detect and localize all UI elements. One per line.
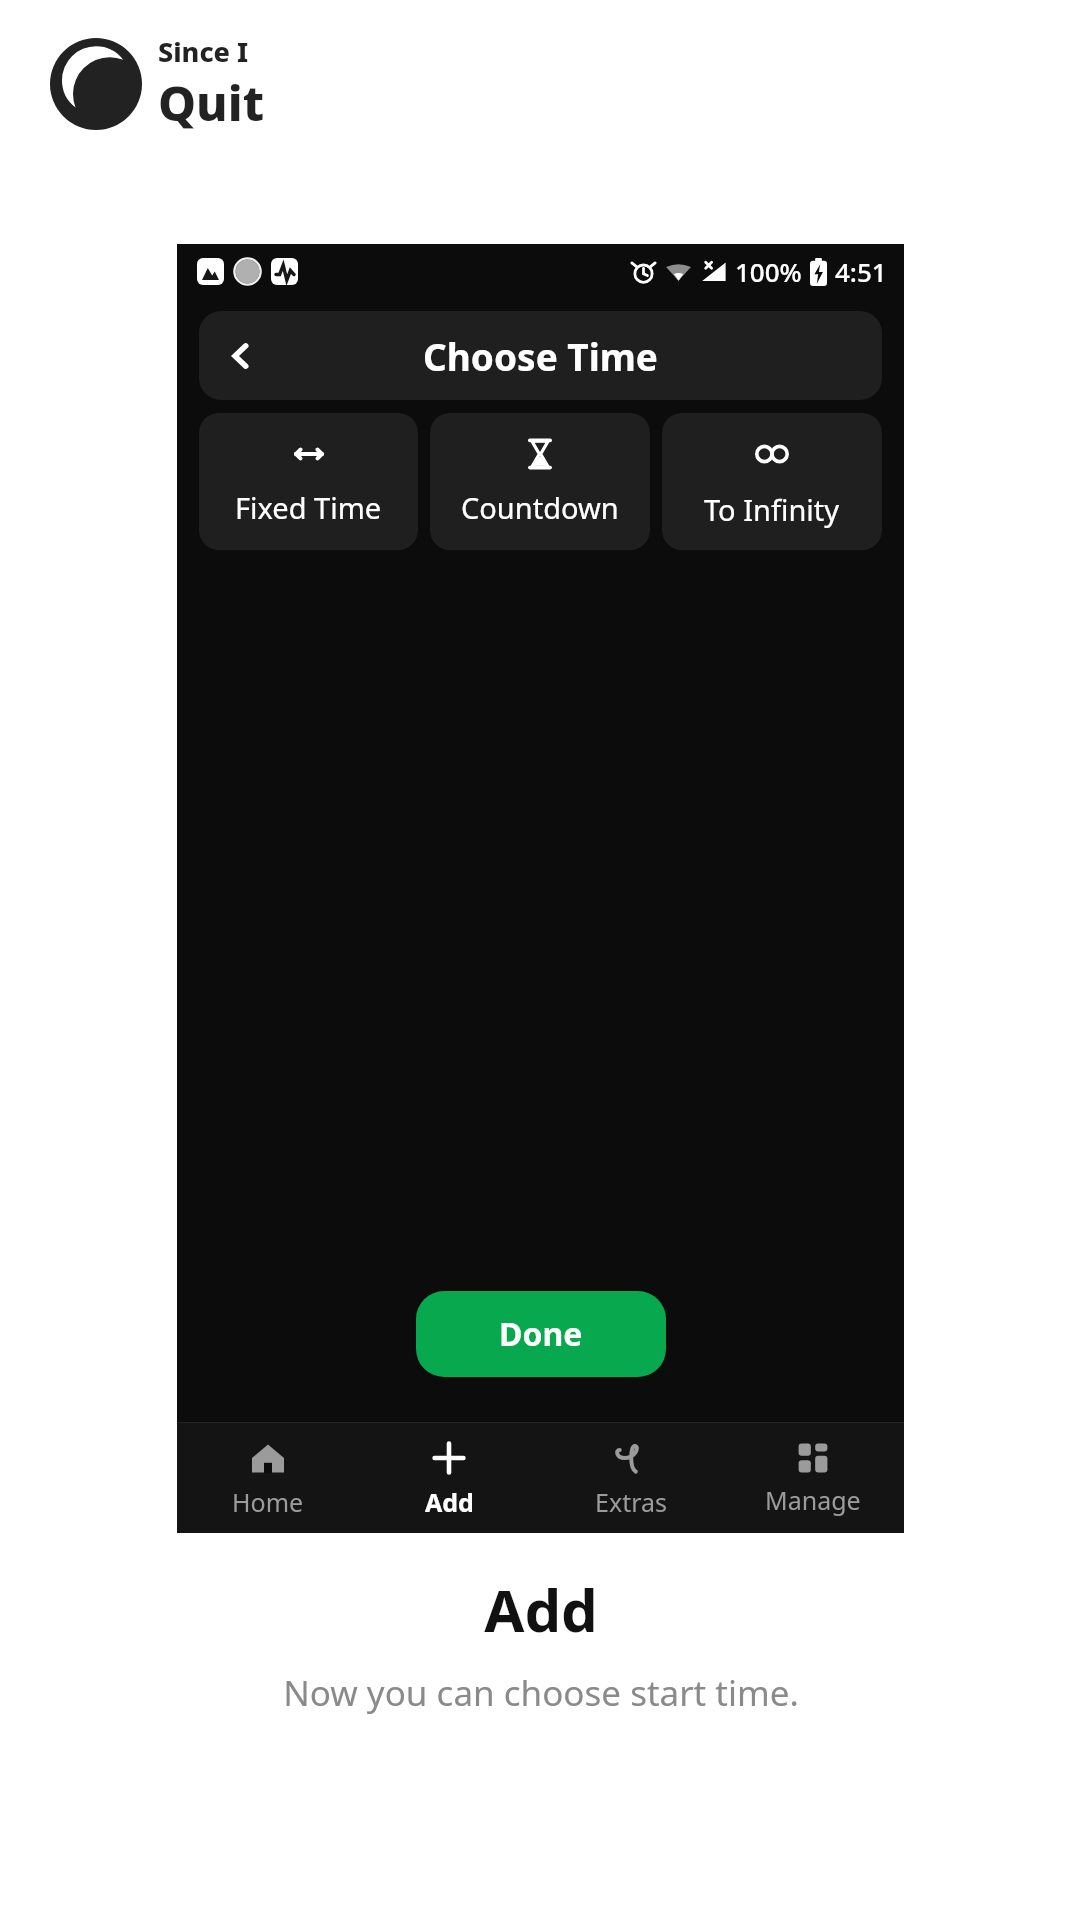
staticText: Now you can choose start time. — [283, 1669, 799, 1717]
staticText: Add — [425, 1485, 474, 1519]
staticText: Countdown — [461, 488, 619, 527]
staticText: Manage — [765, 1483, 861, 1517]
button[interactable]: To Infinity — [662, 413, 882, 550]
button[interactable]: Done — [416, 1291, 666, 1377]
staticText: 100% — [735, 254, 802, 289]
button[interactable]: Back — [213, 328, 269, 384]
staticText: Choose Time — [423, 331, 658, 381]
staticText: Extras — [595, 1485, 667, 1519]
staticText: Done — [499, 1312, 583, 1356]
staticText: Quit — [158, 70, 265, 135]
button[interactable]: Back — [199, 311, 882, 400]
button[interactable]: Fixed Time — [199, 413, 418, 550]
staticText: Fixed Time — [235, 488, 382, 527]
button[interactable]: Extras — [540, 1423, 722, 1533]
staticText: Since I — [158, 33, 249, 70]
button[interactable]: Home — [177, 1423, 358, 1533]
staticText: Add — [484, 1570, 598, 1649]
staticText: To Infinity — [704, 490, 840, 529]
staticText: Home — [232, 1485, 304, 1519]
staticText: 4:51 — [835, 254, 887, 289]
button[interactable]: Countdown — [430, 413, 650, 550]
button[interactable]: Add — [358, 1423, 540, 1533]
button[interactable]: Manage — [722, 1423, 904, 1533]
